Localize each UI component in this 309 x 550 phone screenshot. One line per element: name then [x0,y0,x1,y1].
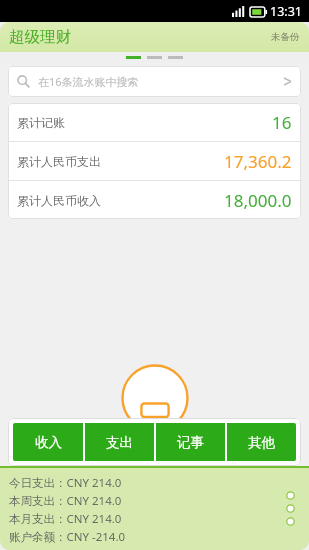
staticText: 累计人民币支出 [17,154,101,169]
staticText: 超级理财 [9,27,71,47]
staticText: 累计记账 [17,115,65,130]
staticText: 记事 [177,434,204,451]
staticText: 支出 [106,434,133,451]
staticText: 收入 [35,434,62,451]
button[interactable]: 累计人民币支出 [8,142,301,180]
button[interactable]: 收入 [13,423,83,461]
button[interactable]: 累计记账 [8,103,301,141]
staticText: 本周支出：CNY 214.0 [9,493,122,509]
button[interactable]: 支出 [85,423,154,461]
staticText: 累计人民币收入 [17,193,101,208]
button[interactable]: Add record [121,364,189,432]
button[interactable]: 累计人民币收入 [8,181,301,219]
staticText: 18,000.0 [224,189,292,212]
button[interactable]: 其他 [227,423,296,461]
staticText: 13:31 [270,3,302,20]
staticText: 本月支出：CNY 214.0 [9,511,122,527]
button[interactable]: 记事 [156,423,225,461]
staticText: 今日支出：CNY 214.0 [9,475,122,491]
staticText: 在16条流水账中搜索 [38,74,139,89]
staticText: 16 [272,111,292,134]
staticText: 17,360.2 [224,150,292,173]
staticText: 未备份 [271,31,300,43]
button[interactable]: 在16条流水账中搜索 [8,66,301,97]
staticText: 账户余额：CNY -214.0 [9,529,126,545]
staticText: 其他 [248,434,275,451]
